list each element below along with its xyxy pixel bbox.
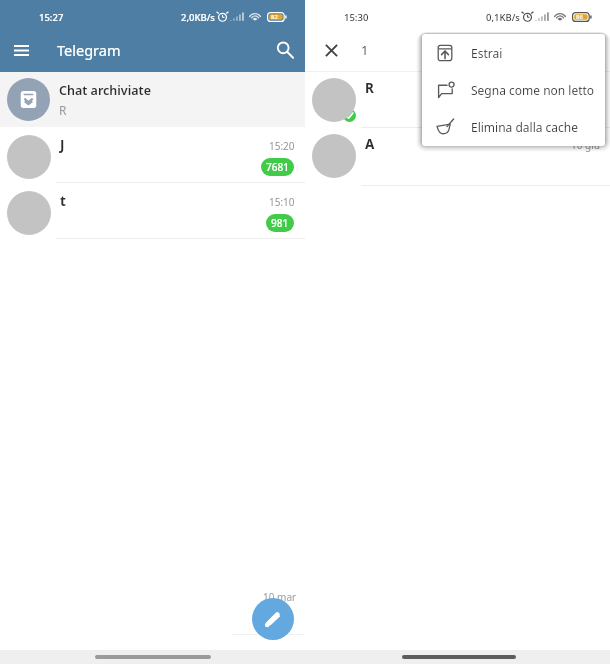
staticText: J (60, 136, 65, 154)
staticText: R (365, 79, 374, 97)
button[interactable]: Close (313, 32, 350, 69)
staticText: A (365, 135, 375, 153)
staticText: 0,1KB/s (486, 11, 520, 24)
staticText: 15:27 (39, 11, 64, 24)
button[interactable]: R (305, 72, 610, 128)
staticText: 7681 (266, 160, 289, 174)
staticText: 2,0KB/s (181, 11, 215, 24)
button[interactable]: Menu (3, 32, 40, 69)
button[interactable]: Chat archiviate (0, 72, 305, 127)
button[interactable]: Segna come non letto (422, 71, 605, 108)
staticText: Segna come non letto (471, 82, 595, 98)
button[interactable]: Estrai (422, 34, 605, 71)
button[interactable]: Search (267, 32, 303, 68)
staticText: 86 (576, 13, 583, 21)
staticText: 82 (271, 13, 278, 21)
staticText: Estrai (471, 45, 503, 61)
button[interactable]: Elimina dalla cache (422, 108, 605, 145)
staticText: 15:20 (269, 139, 295, 153)
staticText: 15:30 (344, 11, 369, 24)
staticText: 1 (361, 41, 369, 59)
button[interactable]: A (305, 128, 610, 186)
staticText: R (59, 102, 67, 118)
button[interactable]: t (0, 183, 305, 239)
staticText: Elimina dalla cache (471, 119, 579, 135)
staticText: 15:10 (269, 195, 295, 209)
button[interactable]: New message (252, 598, 294, 640)
staticText: 981 (271, 216, 289, 230)
staticText: t (60, 192, 66, 210)
staticText: Chat archiviate (59, 82, 151, 99)
staticText: 10 giu (571, 138, 600, 152)
staticText: Telegram (57, 40, 121, 60)
staticText: 10 mar (263, 590, 297, 604)
button[interactable]: J (0, 127, 305, 183)
